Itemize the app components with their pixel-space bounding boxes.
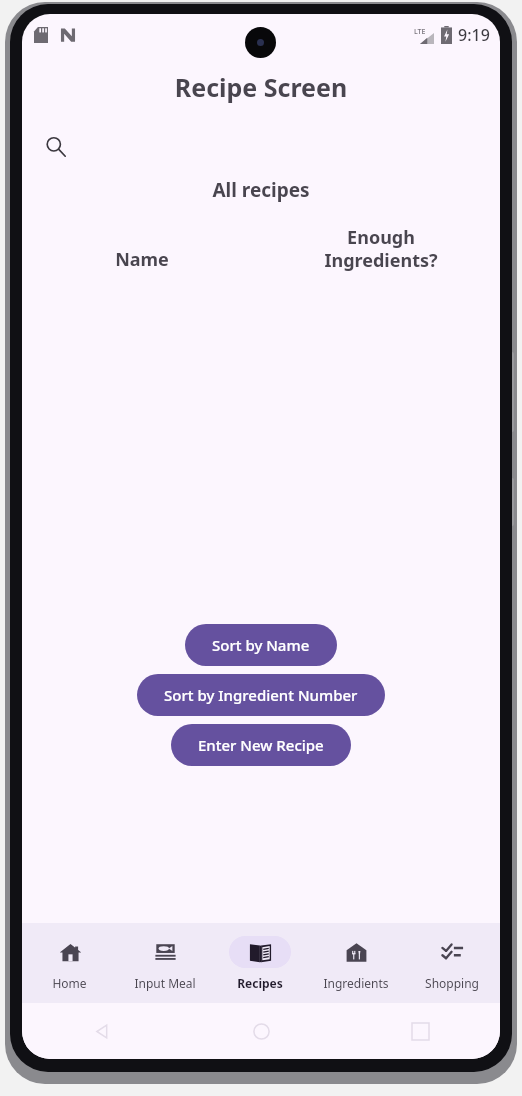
button[interactable]: Recipes <box>212 923 308 1003</box>
staticText: Recipe Screen <box>22 70 500 104</box>
staticText: Input Meal <box>134 975 196 991</box>
button[interactable]: Shopping <box>404 923 500 1003</box>
button[interactable]: Back <box>22 1003 182 1059</box>
staticText: Sort by Name <box>212 635 310 655</box>
staticText: Enough Ingredients? <box>324 225 438 272</box>
staticText: Home <box>52 975 87 991</box>
staticText: Enter New Recipe <box>198 735 324 755</box>
staticText: 9:19 <box>458 24 490 46</box>
button[interactable]: Sort by Ingredient Number <box>137 674 385 716</box>
staticText: Name <box>115 247 169 272</box>
button[interactable]: Home <box>22 923 117 1003</box>
staticText: Ingredients <box>323 975 389 991</box>
staticText: Recipes <box>237 975 283 991</box>
staticText: Shopping <box>425 975 479 991</box>
button[interactable]: Ingredients <box>308 923 404 1003</box>
staticText: Sort by Ingredient Number <box>164 685 358 705</box>
button[interactable]: Enter New Recipe <box>171 724 351 766</box>
staticText: LTE <box>414 27 426 37</box>
button[interactable]: Sort by Name <box>185 624 337 666</box>
button[interactable]: Recents <box>341 1003 500 1059</box>
button[interactable]: Input Meal <box>117 923 212 1003</box>
button[interactable]: Search <box>36 127 76 167</box>
staticText: All recipes <box>22 177 500 203</box>
